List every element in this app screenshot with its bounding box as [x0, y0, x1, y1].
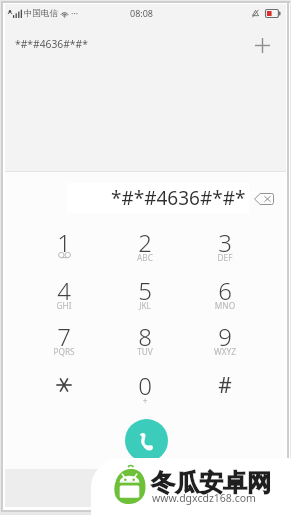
button[interactable]: 9: [185, 313, 265, 359]
staticText: 8: [105, 320, 185, 353]
button[interactable]: 1: [24, 219, 104, 265]
button[interactable]: 4: [24, 267, 104, 313]
staticText: 1: [24, 226, 104, 259]
staticText: *#*#4636#*#*: [15, 37, 88, 51]
button[interactable]: #: [185, 362, 265, 408]
staticText: 冬瓜安卓网: [151, 468, 271, 498]
staticText: PQRS: [24, 346, 104, 357]
button[interactable]: 8: [105, 313, 185, 359]
staticText: JKL: [105, 300, 185, 311]
button[interactable]: Add: [246, 29, 278, 61]
staticText: ···: [71, 7, 79, 19]
staticText: 0: [105, 369, 185, 402]
button[interactable]: Call: [125, 419, 168, 462]
staticText: 7: [24, 320, 104, 353]
button[interactable]: 5: [105, 267, 185, 313]
staticText: 3: [185, 226, 265, 259]
staticText: 中国电信: [24, 8, 58, 19]
button[interactable]: 7: [24, 313, 104, 359]
staticText: ABC: [105, 252, 185, 263]
button[interactable]: Backspace: [249, 184, 279, 214]
button[interactable]: 3: [185, 219, 265, 265]
staticText: 2: [105, 226, 185, 259]
staticText: 5: [105, 274, 185, 307]
staticText: MNO: [185, 300, 265, 311]
staticText: 9: [185, 320, 265, 353]
staticText: 6: [185, 274, 265, 307]
staticText: 4: [24, 274, 104, 307]
staticText: TUV: [105, 346, 185, 357]
button[interactable]: 2: [105, 219, 185, 265]
staticText: DEF: [185, 252, 265, 263]
button[interactable]: 6: [185, 267, 265, 313]
staticText: GHI: [24, 300, 104, 311]
staticText: *#*#4636#*#*: [111, 185, 246, 211]
staticText: +: [105, 395, 185, 406]
staticText: WXYZ: [185, 346, 265, 357]
button[interactable]: [24, 362, 104, 408]
staticText: www.dgxcdz168.com: [152, 491, 256, 505]
button[interactable]: *#*#4636#*#*: [67, 183, 249, 213]
button[interactable]: 0: [105, 362, 185, 408]
staticText: #: [185, 371, 265, 400]
staticText: 08:08: [130, 7, 154, 19]
